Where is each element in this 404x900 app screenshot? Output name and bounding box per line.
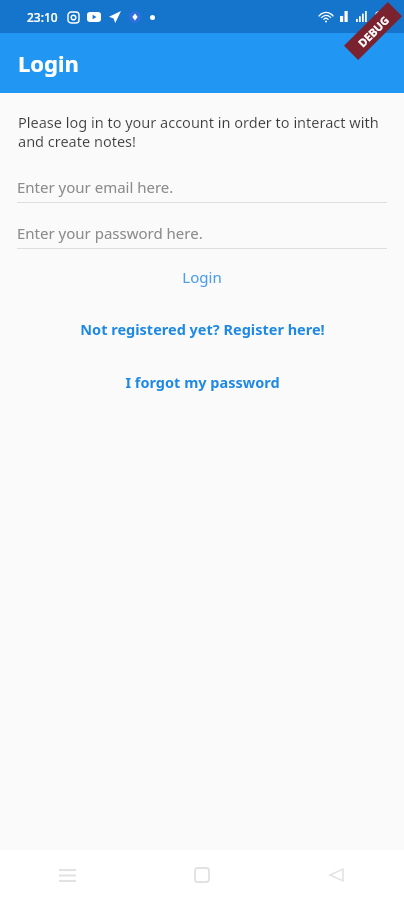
button[interactable]: Not registered yet? Register here! — [0, 315, 404, 343]
staticText: Please log in to your account in order t… — [18, 112, 386, 151]
button[interactable]: Enter your email here. — [17, 171, 387, 203]
button[interactable]: I forgot my password — [0, 368, 404, 396]
staticText: Not registered yet? Register here! — [80, 319, 325, 339]
staticText: Enter your email here. — [17, 177, 174, 197]
button[interactable]: Home — [134, 850, 269, 900]
staticText: I forgot my password — [125, 372, 280, 392]
staticText: Enter your password here. — [17, 223, 203, 243]
button[interactable]: Recents — [0, 850, 134, 900]
staticText: 23:10 — [27, 9, 58, 25]
button[interactable]: Login — [0, 263, 404, 291]
button[interactable]: Enter your password here. — [17, 217, 387, 249]
staticText: DEBUG — [355, 13, 392, 50]
staticText: Login — [18, 48, 79, 78]
staticText: Login — [182, 267, 222, 287]
